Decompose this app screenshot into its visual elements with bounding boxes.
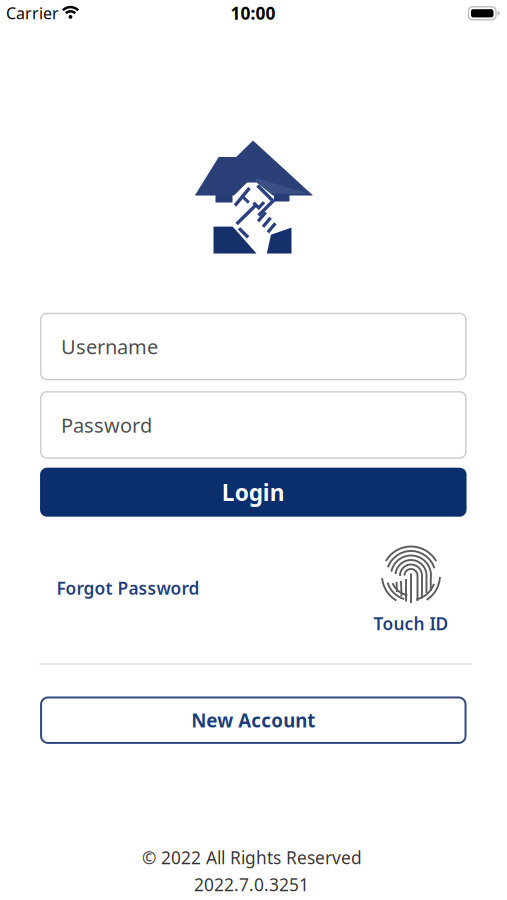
button[interactable]: Touch ID [359,542,463,635]
staticText: Username [61,333,158,360]
button[interactable]: Forgot Password [56,576,199,599]
staticText: New Account [191,708,315,733]
staticText: Login [222,477,285,507]
staticText: Password [61,412,152,438]
staticText: 2022.7.0.3251 [194,873,309,896]
staticText: 10:00 [230,1,275,24]
button[interactable]: Login [40,468,467,517]
button[interactable]: Username [40,313,467,380]
button[interactable]: New Account [40,696,467,744]
staticText: Carrier [6,2,59,24]
staticText: Forgot Password [56,576,199,599]
staticText: © 2022 All Rights Reserved [142,846,362,869]
button[interactable]: Password [40,391,467,459]
staticText: Touch ID [373,612,448,635]
